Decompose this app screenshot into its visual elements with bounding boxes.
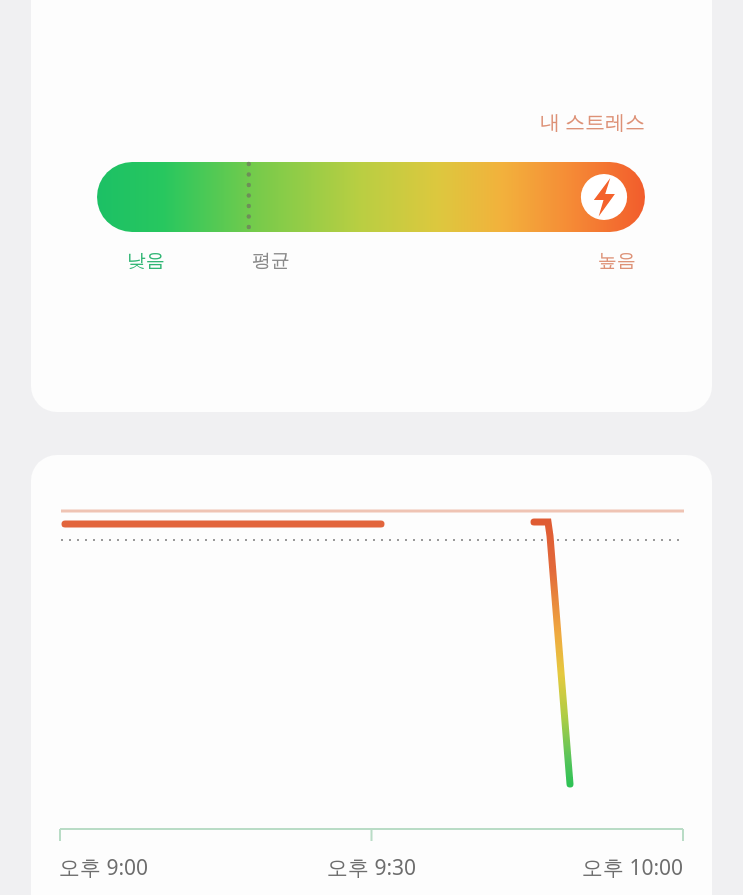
button[interactable]: 내 스트레스 xyxy=(31,0,712,412)
staticText: 오후 9:30 xyxy=(327,853,417,882)
staticText: 오후 10:00 xyxy=(582,853,684,882)
staticText: 오후 9:00 xyxy=(59,853,149,882)
button[interactable]: 오후 9:00 xyxy=(31,455,712,895)
staticText: 낮음 xyxy=(127,249,165,273)
staticText: 높음 xyxy=(598,249,636,273)
staticText: 내 스트레스 xyxy=(540,108,646,135)
staticText: 평균 xyxy=(252,249,290,273)
